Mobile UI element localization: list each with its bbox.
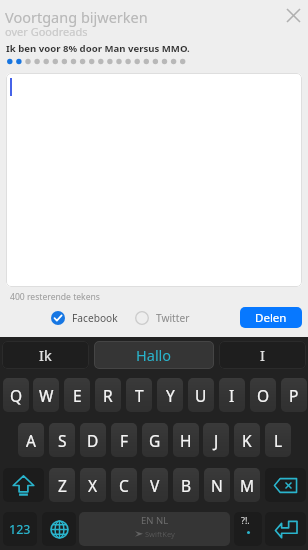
staticText: Voortgang bijwerken: [5, 7, 148, 27]
button[interactable]: Z: [49, 468, 75, 502]
button[interactable]: U: [188, 378, 214, 412]
button[interactable]: N: [204, 468, 230, 502]
button[interactable]: Space: [79, 512, 230, 546]
button[interactable]: Backspace: [265, 468, 306, 502]
button[interactable]: Hallo: [94, 341, 214, 369]
staticText: X: [88, 475, 98, 496]
button[interactable]: S: [49, 423, 75, 457]
staticText: EN NL: [141, 514, 169, 527]
button[interactable]: L: [265, 423, 291, 457]
staticText: I: [260, 345, 265, 365]
staticText: over Goodreads: [5, 24, 88, 39]
button[interactable]: D: [80, 423, 106, 457]
button[interactable]: K: [234, 423, 260, 457]
button[interactable]: I: [219, 378, 245, 412]
button[interactable]: Twitter: [135, 310, 190, 326]
button[interactable]: Shift: [3, 468, 44, 502]
staticText: S: [58, 430, 67, 451]
staticText: 123: [9, 521, 31, 538]
button[interactable]: I: [219, 341, 306, 369]
staticText: ?!.: [241, 514, 250, 526]
staticText: B: [181, 475, 192, 496]
button[interactable]: V: [142, 468, 168, 502]
staticText: V: [150, 475, 160, 496]
button[interactable]: H: [173, 423, 199, 457]
button[interactable]: T: [126, 378, 152, 412]
button[interactable]: R: [95, 378, 121, 412]
button[interactable]: C: [111, 468, 137, 502]
button[interactable]: A: [18, 423, 44, 457]
button[interactable]: F: [111, 423, 137, 457]
staticText: Q: [10, 385, 23, 406]
staticText: K: [242, 430, 252, 451]
staticText: H: [180, 430, 192, 451]
button[interactable]: Numbers: [3, 512, 37, 546]
button[interactable]: O: [250, 378, 276, 412]
button[interactable]: X: [80, 468, 106, 502]
staticText: I: [229, 385, 235, 406]
staticText: W: [39, 385, 54, 406]
button[interactable]: Change language: [42, 512, 76, 546]
staticText: Y: [166, 385, 175, 406]
staticText: P: [289, 385, 299, 406]
staticText: A: [26, 430, 36, 451]
staticText: G: [149, 430, 161, 451]
staticText: F: [120, 430, 129, 451]
staticText: M: [240, 475, 255, 496]
button[interactable]: Facebook: [51, 310, 118, 326]
staticText: Ik: [39, 345, 52, 365]
staticText: U: [195, 385, 207, 406]
staticText: O: [257, 385, 270, 406]
button[interactable]: W: [33, 378, 59, 412]
staticText: Twitter: [156, 311, 190, 325]
button[interactable]: B: [173, 468, 199, 502]
staticText: J: [214, 430, 219, 451]
staticText: Delen: [255, 310, 287, 326]
button[interactable]: Close: [281, 3, 305, 27]
button[interactable]: E: [64, 378, 90, 412]
staticText: Hallo: [136, 345, 172, 365]
button[interactable]: [6, 73, 302, 287]
staticText: Z: [58, 475, 67, 496]
staticText: L: [274, 430, 283, 451]
staticText: D: [87, 430, 99, 451]
staticText: E: [73, 385, 82, 406]
staticText: N: [211, 475, 223, 496]
staticText: Facebook: [72, 311, 118, 325]
button[interactable]: J: [203, 423, 229, 457]
button[interactable]: Enter: [265, 512, 306, 546]
button[interactable]: M: [234, 468, 260, 502]
staticText: SwiftKey: [145, 529, 175, 539]
button[interactable]: G: [142, 423, 168, 457]
button[interactable]: Y: [157, 378, 183, 412]
button[interactable]: P: [281, 378, 307, 412]
staticText: 400 resterende tekens: [10, 291, 100, 303]
button[interactable]: Delen: [240, 307, 302, 328]
staticText: R: [103, 385, 113, 406]
button[interactable]: Ik: [2, 341, 89, 369]
button[interactable]: Q: [3, 378, 29, 412]
staticText: C: [119, 475, 129, 496]
staticText: Ik ben voor 8% door Man versus MMO.: [6, 42, 190, 55]
staticText: T: [135, 385, 144, 406]
button[interactable]: Symbols: [234, 512, 262, 546]
